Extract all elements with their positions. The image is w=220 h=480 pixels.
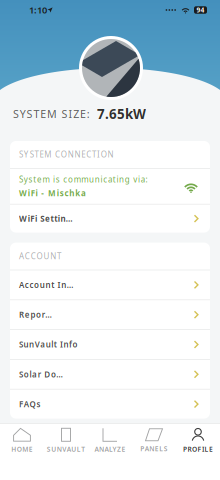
- button[interactable]: Account Info: [10, 270, 210, 299]
- staticText: FAQs: [19, 399, 40, 409]
- staticText: 7.65kW: [97, 105, 146, 123]
- button[interactable]: Solar Docs: [10, 360, 210, 389]
- staticText: HOME: [11, 445, 33, 454]
- staticText: ANALYZE: [94, 445, 125, 454]
- staticText: Reports: [19, 309, 53, 320]
- staticText: 94: [196, 6, 204, 14]
- staticText: SunVault Info: [19, 339, 78, 350]
- staticText: PROFILE: [183, 445, 213, 454]
- staticText: 1:10: [29, 4, 47, 16]
- button[interactable]: SunVault Info: [10, 330, 210, 359]
- staticText: WiFi Settings: [19, 213, 76, 224]
- button[interactable]: Reports: [10, 300, 210, 329]
- button[interactable]: PANELS: [132, 424, 176, 458]
- button[interactable]: PROFILE: [176, 424, 220, 458]
- staticText: PANELS: [140, 444, 168, 453]
- staticText: ACCOUNT: [19, 251, 61, 261]
- staticText: SYSTEM CONNECTION: [19, 149, 114, 160]
- staticText: Account Info: [19, 280, 76, 290]
- staticText: SYSTEM SIZE:: [13, 107, 90, 121]
- button[interactable]: ANALYZE: [88, 424, 132, 458]
- button[interactable]: System is communicating via:: [10, 169, 210, 204]
- staticText: Solar Docs: [19, 369, 65, 380]
- button[interactable]: FAQs: [10, 390, 210, 419]
- button[interactable]: WiFi Settings: [10, 205, 210, 233]
- staticText: System is communicating via:: [19, 174, 147, 185]
- staticText: WiFi - Mischka: [19, 188, 86, 198]
- button[interactable]: SUNVAULT: [44, 424, 88, 458]
- staticText: SUNVAULT: [47, 445, 85, 454]
- button[interactable]: HOME: [0, 424, 44, 458]
